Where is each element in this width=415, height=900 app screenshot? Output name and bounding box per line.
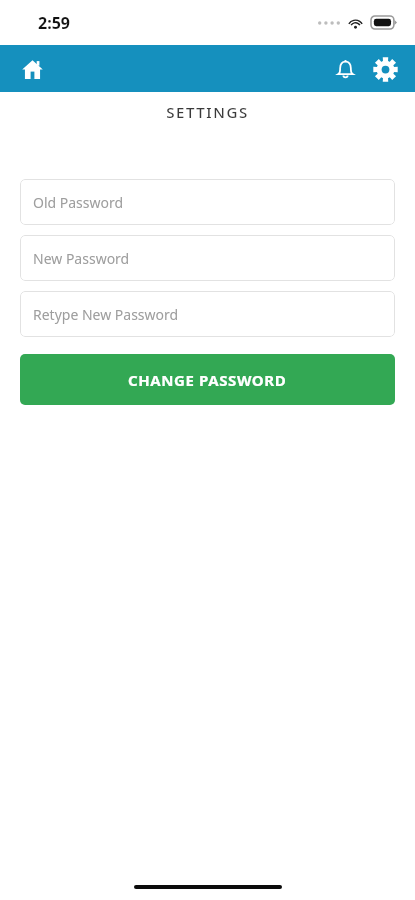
button[interactable]: Settings <box>365 49 405 89</box>
staticText: SETTINGS <box>0 102 415 122</box>
button[interactable]: New Password <box>20 235 395 281</box>
button[interactable]: Retype New Password <box>20 291 395 337</box>
button[interactable]: Home <box>12 49 52 89</box>
staticText: New Password <box>33 249 130 268</box>
staticText: 2:59 <box>38 12 70 34</box>
staticText: Old Password <box>33 193 124 212</box>
button[interactable]: Notifications <box>325 49 365 89</box>
button[interactable]: CHANGE PASSWORD <box>20 354 395 405</box>
staticText: Retype New Password <box>33 305 179 324</box>
staticText: CHANGE PASSWORD <box>128 370 287 390</box>
button[interactable]: Old Password <box>20 179 395 225</box>
